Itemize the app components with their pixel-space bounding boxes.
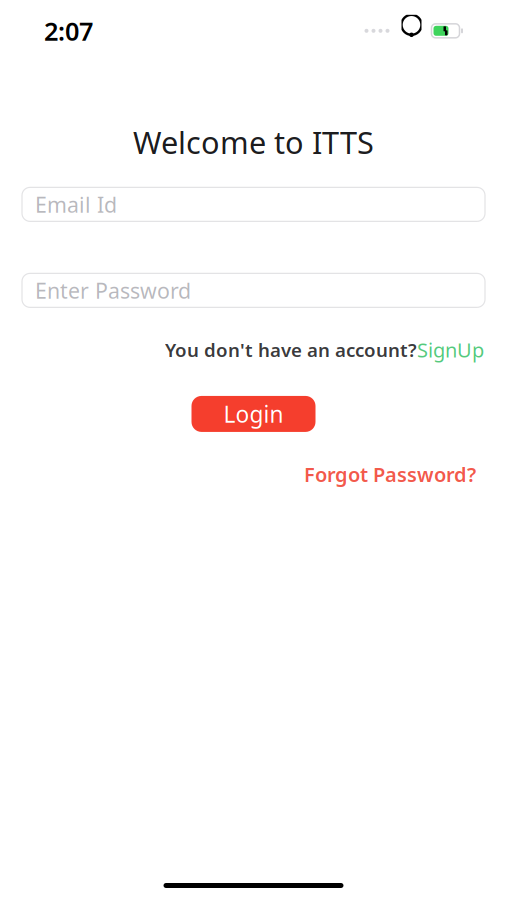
staticText: Login xyxy=(223,399,283,429)
button[interactable]: Email Id xyxy=(22,187,485,221)
staticText: Forgot Password? xyxy=(304,461,476,487)
button[interactable]: Forgot Password? xyxy=(304,461,476,487)
staticText: Email Id xyxy=(35,190,117,218)
button[interactable]: SignUp xyxy=(417,336,484,363)
staticText: 2:07 xyxy=(44,14,93,48)
staticText: You don't have an account? xyxy=(165,337,417,362)
button[interactable]: Enter Password xyxy=(22,273,485,307)
staticText: Enter Password xyxy=(35,276,191,304)
button[interactable]: Login xyxy=(191,396,315,432)
staticText: Welcome to ITTS xyxy=(133,122,374,162)
staticText: SignUp xyxy=(417,336,484,363)
